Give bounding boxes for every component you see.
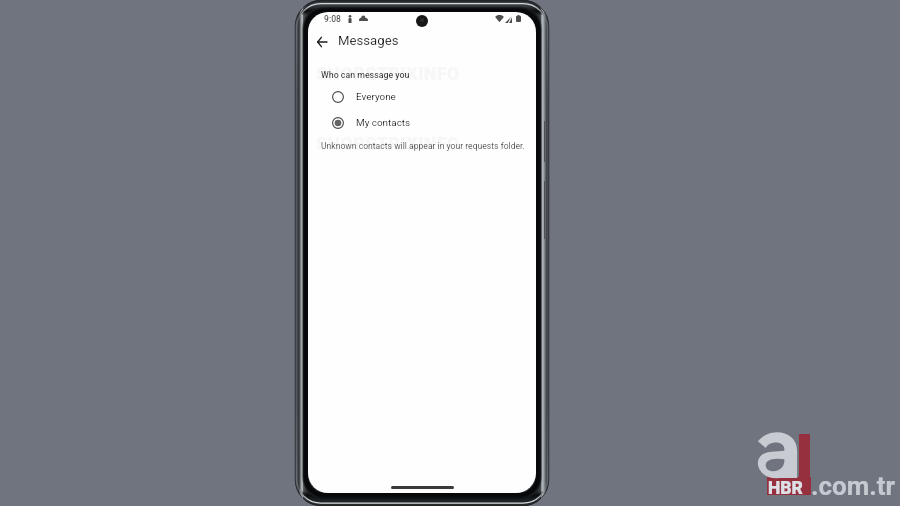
staticText: HBR bbox=[768, 478, 804, 499]
button[interactable]: Back bbox=[308, 28, 335, 55]
staticText: SHOPSTRIXINFO bbox=[316, 64, 460, 85]
staticText: Everyone bbox=[356, 91, 396, 103]
staticText: Messages bbox=[338, 33, 399, 48]
staticText: .com.tr bbox=[811, 471, 896, 501]
staticText: Who can message you bbox=[321, 70, 410, 80]
button[interactable]: Everyone bbox=[308, 86, 536, 108]
staticText: Unknown contacts will appear in your req… bbox=[321, 141, 525, 151]
staticText: SHOPSTRIXINFO bbox=[316, 134, 460, 155]
staticText: 9:08 bbox=[324, 14, 341, 24]
staticText: My contacts bbox=[356, 117, 411, 129]
button[interactable]: My contacts bbox=[308, 112, 536, 134]
